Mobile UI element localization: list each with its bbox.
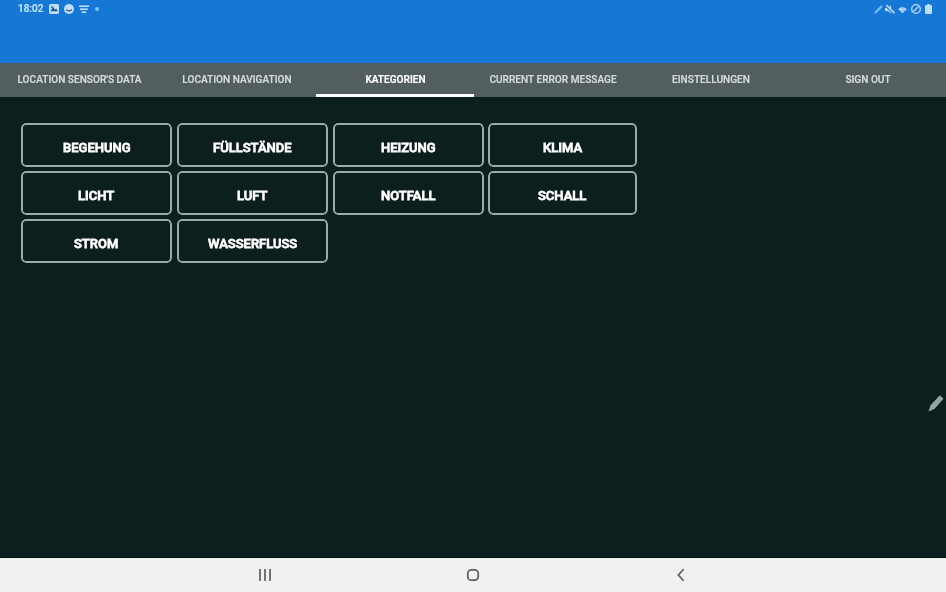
button[interactable]: STROM (21, 219, 172, 263)
button[interactable]: KATEGORIEN (316, 63, 474, 97)
staticText: LOCATION SENSOR'S DATA (17, 74, 142, 86)
button[interactable]: Home (443, 557, 503, 592)
button[interactable]: NOTFALL (333, 171, 484, 215)
staticText: KATEGORIEN (365, 74, 426, 86)
staticText: NOTFALL (381, 188, 436, 203)
button[interactable]: Back (651, 557, 711, 592)
button[interactable]: SIGN OUT (790, 63, 946, 97)
staticText: SCHALL (538, 188, 587, 203)
button[interactable]: BEGEHUNG (21, 123, 172, 167)
staticText: SIGN OUT (845, 74, 891, 86)
staticText: LOCATION NAVIGATION (182, 74, 292, 86)
button[interactable]: KLIMA (488, 123, 637, 167)
button[interactable]: LUFT (177, 171, 328, 215)
staticText: HEIZUNG (381, 140, 436, 155)
button[interactable]: Recent apps (235, 557, 295, 592)
staticText: LUFT (237, 188, 268, 203)
other: Stylus (928, 395, 944, 412)
staticText: CURRENT ERROR MESSAGE (489, 74, 617, 86)
button[interactable]: HEIZUNG (333, 123, 484, 167)
staticText: EINSTELLUNGEN (672, 74, 750, 86)
button[interactable]: FÜLLSTÄNDE (177, 123, 328, 167)
button[interactable]: LOCATION NAVIGATION (158, 63, 316, 97)
staticText: WASSERFLUSS (208, 236, 298, 251)
button[interactable]: CURRENT ERROR MESSAGE (474, 63, 632, 97)
staticText: FÜLLSTÄNDE (213, 140, 292, 155)
button[interactable]: SCHALL (488, 171, 637, 215)
staticText: STROM (74, 236, 119, 251)
staticText: LICHT (78, 188, 115, 203)
staticText: BEGEHUNG (63, 140, 131, 155)
button[interactable]: EINSTELLUNGEN (632, 63, 790, 97)
button[interactable]: LICHT (21, 171, 172, 215)
staticText: KLIMA (543, 140, 583, 155)
button[interactable]: WASSERFLUSS (177, 219, 328, 263)
button[interactable]: LOCATION SENSOR'S DATA (0, 63, 158, 97)
staticText: 18:02 (18, 3, 44, 15)
